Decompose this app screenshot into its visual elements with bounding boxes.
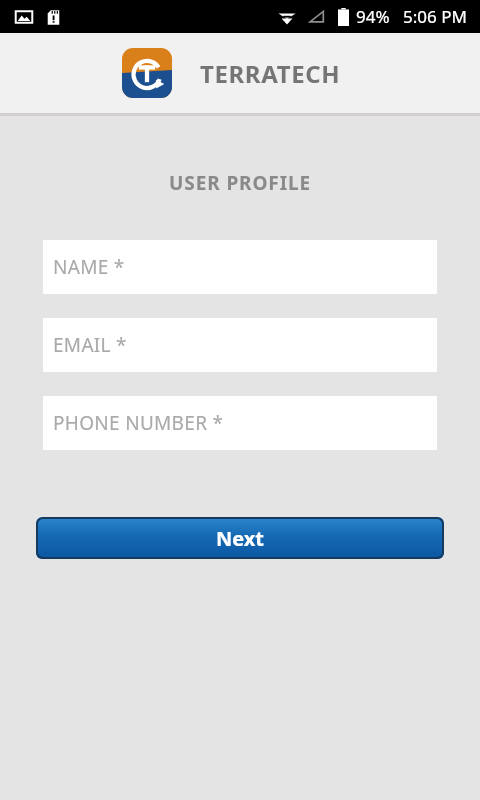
button[interactable]: EMAIL *	[43, 318, 437, 372]
button[interactable]: Next	[36, 517, 444, 559]
staticText: EMAIL *	[53, 332, 127, 358]
button[interactable]: NAME *	[43, 240, 437, 294]
button[interactable]: PHONE NUMBER *	[43, 396, 437, 450]
staticText: PHONE NUMBER *	[53, 410, 224, 436]
staticText: TERRATECH	[200, 57, 341, 90]
other: TerraTech logo	[122, 48, 172, 98]
staticText: 94%	[356, 5, 390, 28]
staticText: 5:06 PM	[403, 5, 467, 28]
staticText: NAME *	[53, 254, 125, 280]
staticText: Next	[216, 525, 265, 552]
staticText: USER PROFILE	[169, 170, 312, 196]
